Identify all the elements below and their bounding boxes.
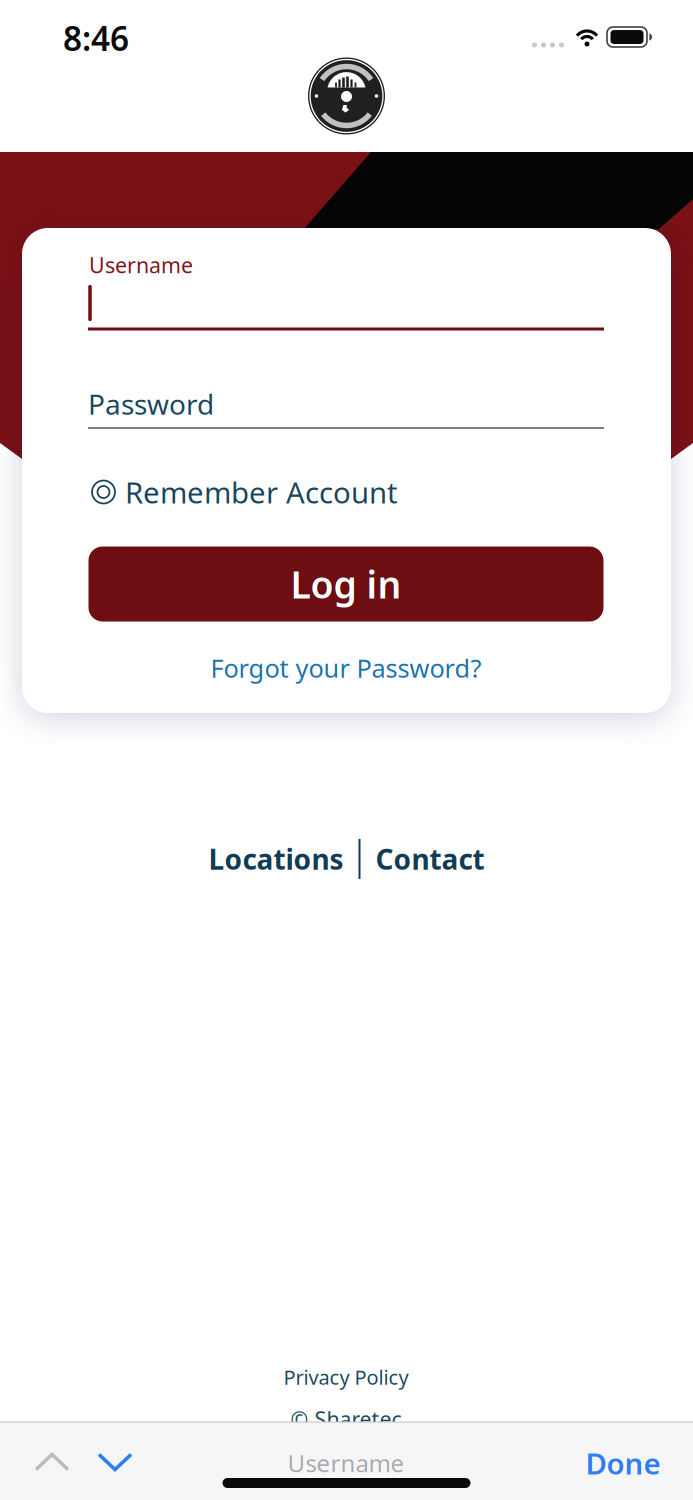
button[interactable]: Contact (375, 840, 484, 878)
staticText: Remember Account (125, 472, 398, 511)
staticText: Username (89, 251, 193, 279)
button[interactable]: Done (585, 1443, 660, 1482)
button[interactable]: Privacy Policy (283, 1364, 408, 1390)
button[interactable]: Next field (97, 1451, 133, 1472)
staticText: Privacy Policy (283, 1364, 408, 1390)
staticText: © Sharetec (290, 1405, 401, 1433)
staticText: Log in (290, 559, 401, 609)
staticText: Done (585, 1443, 660, 1482)
button[interactable]: Previous field (34, 1451, 70, 1472)
staticText: Username (287, 1447, 404, 1479)
staticText: Password (88, 385, 214, 423)
button[interactable]: Forgot your Password? (210, 651, 481, 685)
staticText: Forgot your Password? (210, 651, 481, 685)
staticText: Locations (208, 840, 343, 878)
button[interactable]: Locations (208, 840, 343, 878)
button[interactable]: Log in (88, 546, 603, 621)
staticText: 8:46 (63, 16, 129, 60)
staticText: Contact (375, 840, 484, 878)
button[interactable]: Remember Account (92, 472, 398, 511)
